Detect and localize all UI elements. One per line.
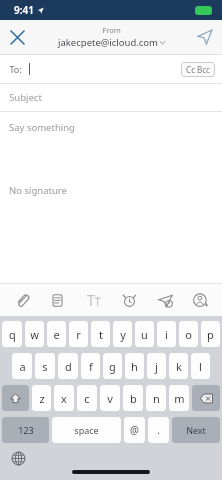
staticText: f <box>89 359 93 374</box>
button[interactable]: Document <box>43 286 71 314</box>
button[interactable]: Shift <box>2 385 29 411</box>
staticText: z <box>39 391 45 406</box>
button[interactable]: Backspace <box>192 385 220 411</box>
button[interactable]: f <box>81 353 100 379</box>
button[interactable]: o <box>179 321 198 347</box>
button[interactable]: r <box>69 321 88 347</box>
staticText: 9:41 <box>14 3 34 17</box>
button[interactable]: m <box>169 385 189 411</box>
staticText: y <box>120 327 126 342</box>
staticText: o <box>185 327 192 342</box>
button[interactable]: k <box>169 353 188 379</box>
button[interactable]: Attach <box>8 286 36 314</box>
button[interactable]: @ <box>124 417 145 443</box>
staticText: d <box>65 359 72 374</box>
staticText: m <box>174 391 185 406</box>
button[interactable]: j <box>147 353 166 379</box>
button[interactable]: Cc Bcc <box>181 62 215 77</box>
staticText: Cc Bcc <box>186 64 210 75</box>
button[interactable]: Subject <box>0 84 222 111</box>
staticText: i <box>165 327 168 342</box>
staticText: jakecpete@icloud.com <box>58 36 158 49</box>
staticText: a <box>19 359 26 374</box>
button[interactable]: Format text <box>79 286 107 314</box>
button[interactable]: Next <box>172 417 220 443</box>
button[interactable]: l <box>191 353 210 379</box>
button[interactable]: x <box>54 385 74 411</box>
button[interactable]: q <box>2 321 22 347</box>
staticText: u <box>141 327 148 342</box>
button[interactable]: i <box>157 321 176 347</box>
staticText: 123 <box>18 424 34 436</box>
staticText: g <box>109 359 116 374</box>
button[interactable]: g <box>103 353 122 379</box>
button[interactable]: e <box>47 321 66 347</box>
staticText: From <box>102 25 121 35</box>
button[interactable]: n <box>146 385 166 411</box>
staticText: s <box>42 359 48 374</box>
staticText: space <box>74 424 99 436</box>
staticText: k <box>176 359 182 374</box>
staticText: j <box>155 359 158 374</box>
button[interactable]: space <box>52 417 121 443</box>
button[interactable]: Send <box>188 20 222 54</box>
staticText: t <box>99 327 103 342</box>
button[interactable]: z <box>32 385 51 411</box>
button[interactable]: u <box>135 321 154 347</box>
staticText: . <box>157 423 160 437</box>
staticText: Subject <box>9 91 42 104</box>
button[interactable]: v <box>100 385 120 411</box>
staticText: h <box>131 359 138 374</box>
button[interactable]: 123 <box>2 417 49 443</box>
button[interactable]: y <box>113 321 132 347</box>
staticText: @ <box>130 423 139 437</box>
staticText: e <box>53 327 60 342</box>
staticText: l <box>199 359 202 374</box>
staticText: r <box>76 327 81 342</box>
button[interactable]: a <box>12 353 32 379</box>
button[interactable]: h <box>125 353 144 379</box>
button[interactable]: Send later <box>151 286 179 314</box>
button[interactable]: Change keyboard language <box>9 449 27 467</box>
staticText: Next <box>186 424 206 436</box>
staticText: p <box>207 327 214 342</box>
staticText: To: <box>9 63 22 75</box>
staticText: q <box>9 327 16 342</box>
button[interactable]: To: <box>0 55 222 83</box>
staticText: w <box>30 327 39 342</box>
button[interactable]: Add person <box>186 286 214 314</box>
staticText: No signature <box>9 184 67 197</box>
staticText: n <box>153 391 160 406</box>
button[interactable]: w <box>25 321 44 347</box>
staticText: x <box>61 391 67 406</box>
button[interactable]: d <box>58 353 78 379</box>
button[interactable]: c <box>77 385 97 411</box>
staticText: b <box>130 391 137 406</box>
button[interactable]: t <box>91 321 110 347</box>
button[interactable]: p <box>201 321 220 347</box>
button[interactable]: Say something <box>0 112 222 142</box>
button[interactable]: s <box>35 353 55 379</box>
button[interactable]: Close <box>0 20 34 54</box>
staticText: Say something <box>9 121 75 134</box>
button[interactable]: Remind me <box>115 286 143 314</box>
staticText: v <box>107 391 113 406</box>
staticText: c <box>84 391 90 406</box>
button[interactable]: . <box>148 417 169 443</box>
button[interactable]: b <box>123 385 143 411</box>
